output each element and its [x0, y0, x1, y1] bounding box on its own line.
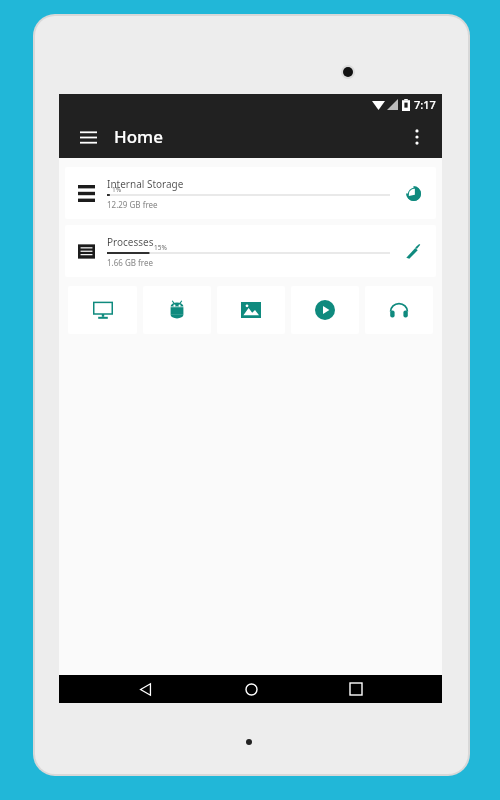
button[interactable]: Videos	[291, 286, 359, 334]
button[interactable]: Clean memory	[390, 231, 436, 271]
button[interactable]: Back	[125, 675, 165, 703]
button[interactable]: Open navigation menu	[71, 120, 105, 154]
button[interactable]: Internal Storage	[65, 167, 436, 219]
button[interactable]: Recent apps	[336, 675, 376, 703]
button[interactable]: Apps	[143, 286, 211, 334]
staticText: Processes	[107, 235, 154, 249]
button[interactable]: Storage analysis	[390, 173, 436, 213]
staticText: Internal Storage	[107, 177, 184, 191]
button[interactable]: Processes	[65, 225, 436, 277]
button[interactable]: More options	[400, 120, 434, 154]
staticText: 1.66 GB free	[107, 257, 153, 268]
staticText: 7:17	[414, 97, 436, 112]
button[interactable]: System info	[68, 286, 137, 334]
staticText: 1%	[112, 185, 122, 194]
button[interactable]: Home	[231, 675, 271, 703]
staticText: 15%	[154, 243, 167, 252]
button[interactable]: Images	[217, 286, 285, 334]
staticText: Home	[114, 125, 163, 148]
button[interactable]: Audio	[365, 286, 433, 334]
staticText: 12.29 GB free	[107, 199, 158, 210]
